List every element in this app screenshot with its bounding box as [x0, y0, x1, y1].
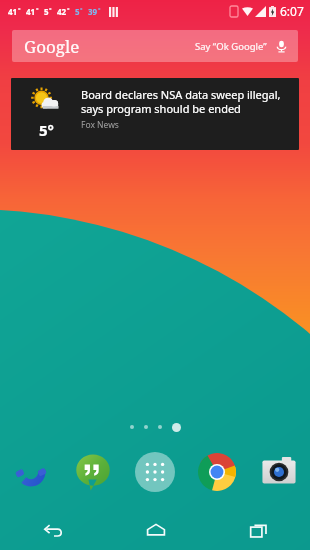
button[interactable]: Google	[12, 30, 298, 62]
staticText: 39	[88, 6, 98, 17]
staticText: 6:07	[280, 3, 304, 19]
staticText: °	[36, 6, 39, 14]
staticText: Say “Ok Google”	[195, 40, 267, 53]
button[interactable]: Voice search	[274, 39, 288, 53]
staticText: Board declares NSA data sweep illegal, s…	[81, 87, 291, 116]
staticText: 41	[8, 6, 18, 17]
button[interactable]: Phone	[0, 448, 62, 496]
button[interactable]: Apps	[124, 448, 186, 496]
staticText: °	[80, 6, 83, 14]
staticText: 5	[75, 6, 80, 17]
staticText: °	[98, 6, 101, 14]
button[interactable]: Back	[0, 510, 104, 550]
staticText: 42	[57, 6, 67, 17]
button[interactable]: Chrome	[186, 448, 248, 496]
staticText: °	[49, 6, 52, 14]
staticText: °	[67, 6, 70, 14]
button[interactable]: Recents	[207, 510, 310, 550]
staticText: Google	[24, 35, 80, 58]
staticText: 41	[26, 6, 36, 17]
button[interactable]: Home	[104, 510, 207, 550]
button[interactable]: 5°	[11, 78, 299, 150]
staticText: 5°	[39, 120, 54, 140]
button[interactable]: Camera	[248, 448, 310, 496]
button[interactable]: Hangouts	[62, 448, 124, 496]
staticText: Fox News	[81, 119, 119, 131]
staticText: 5	[44, 6, 49, 17]
staticText: °	[18, 6, 21, 14]
